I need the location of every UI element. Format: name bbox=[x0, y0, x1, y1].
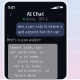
staticText: ⋯ bbox=[58, 11, 63, 17]
staticText: 9:41 bbox=[8, 5, 15, 10]
staticText: AI Chat bbox=[27, 11, 44, 17]
staticText: Here's a json walker: bbox=[7, 38, 41, 42]
staticText: def walk(node, w): bbox=[10, 50, 46, 54]
staticText: import json, sys bbox=[10, 46, 42, 49]
staticText: word accepted from the user bbox=[17, 30, 59, 34]
staticText: for k in node: bbox=[10, 64, 42, 68]
button[interactable]: More bbox=[57, 11, 64, 16]
button[interactable]: Back bbox=[7, 11, 14, 16]
staticText: return None bbox=[10, 74, 36, 77]
staticText: write a json node to traverse a bbox=[17, 25, 62, 29]
staticText: ▁▃▅ bbox=[50, 6, 56, 9]
staticText: ‹ bbox=[9, 10, 11, 18]
staticText: Online · GPT-4 bbox=[26, 17, 48, 21]
staticText: if w in node: bbox=[10, 55, 40, 58]
staticText: yield node[w] bbox=[10, 60, 44, 63]
staticText: walk(node[k], w) bbox=[10, 69, 50, 73]
